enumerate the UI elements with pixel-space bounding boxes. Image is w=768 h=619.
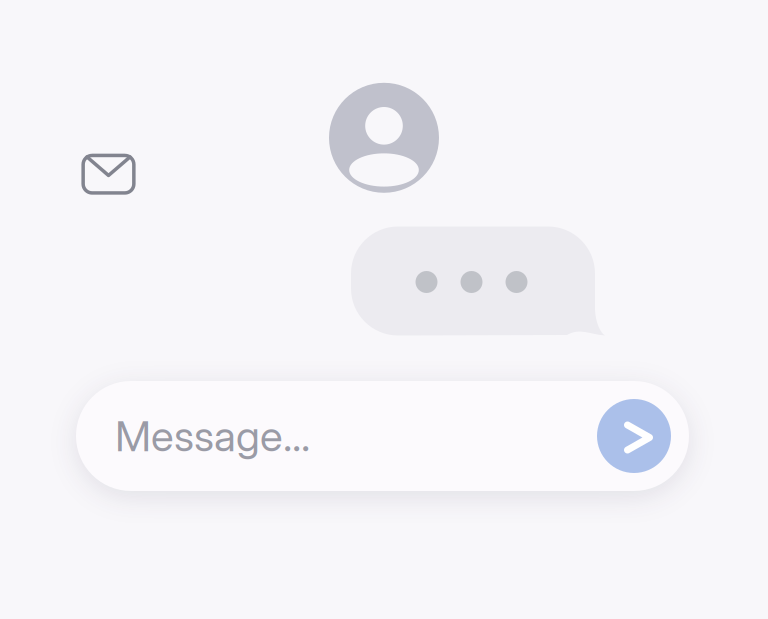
button[interactable]: Send <box>597 399 671 473</box>
button[interactable]: Mail <box>72 144 144 204</box>
staticText: Message... <box>115 411 310 461</box>
